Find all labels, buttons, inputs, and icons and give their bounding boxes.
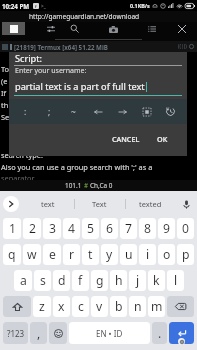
button[interactable]: l [167, 270, 184, 291]
button[interactable]: b [110, 296, 127, 317]
button[interactable]: Close [176, 23, 187, 34]
staticText: ?123 [7, 328, 25, 339]
staticText: ((|)) [178, 43, 187, 50]
button[interactable]: 3 [43, 218, 61, 239]
button[interactable]: Move left [91, 104, 106, 119]
button[interactable]: k [148, 270, 165, 291]
button[interactable]: 5 [82, 218, 99, 239]
button[interactable]: 4 [63, 218, 80, 239]
button[interactable]: ~ [66, 104, 81, 119]
button[interactable]: . [152, 322, 167, 344]
button[interactable]: texted [125, 191, 176, 216]
button[interactable]: Enter [169, 322, 194, 344]
staticText: e [49, 246, 56, 263]
staticText: z [39, 298, 45, 315]
staticText: x [58, 298, 65, 315]
button[interactable]: Move right [115, 104, 130, 119]
button[interactable]: List [146, 23, 157, 34]
button[interactable]: Select all [139, 104, 154, 119]
staticText: . [158, 325, 162, 342]
staticText: t [88, 246, 93, 263]
staticText: 0 [182, 220, 189, 237]
button[interactable]: w [23, 244, 41, 265]
button[interactable]: h [110, 270, 127, 291]
staticText: separator. [1, 173, 36, 183]
button[interactable]: d [53, 270, 70, 291]
staticText: To [1, 64, 10, 74]
button[interactable]: z [33, 296, 51, 317]
button[interactable]: v [91, 296, 108, 317]
staticText: c [78, 298, 84, 315]
button[interactable]: Text [74, 191, 125, 216]
button[interactable]: Voice input [176, 194, 196, 214]
staticText: 4 [68, 220, 75, 237]
button[interactable]: , [30, 322, 47, 344]
staticText: g [96, 272, 104, 289]
button[interactable]: 7 [120, 218, 137, 239]
staticText: : [24, 106, 27, 118]
button[interactable]: CANCEL [109, 131, 143, 147]
button[interactable]: Camera [108, 24, 119, 35]
button[interactable]: n [129, 296, 146, 317]
button[interactable]: u [120, 244, 137, 265]
button[interactable]: History [163, 104, 178, 119]
staticText: EN • ID [96, 328, 123, 339]
button[interactable]: j [129, 270, 146, 291]
staticText: (e [1, 76, 8, 86]
button[interactable]: Shift [3, 296, 31, 317]
button[interactable]: Search [69, 23, 80, 34]
button[interactable]: i [139, 244, 156, 265]
button[interactable]: y [101, 244, 118, 265]
staticText: Also you can use a group search with ';'… [1, 162, 153, 172]
button[interactable]: 2 [23, 218, 41, 239]
button[interactable]: m [148, 296, 165, 317]
staticText: ~ [71, 106, 76, 118]
staticText: r [69, 246, 75, 263]
button[interactable]: 9 [158, 218, 175, 239]
staticText: n [134, 298, 142, 315]
staticText: d [58, 272, 66, 289]
button[interactable]: 0 [177, 218, 194, 239]
staticText: m [151, 298, 163, 315]
button[interactable]: q [3, 244, 21, 265]
button[interactable]: s [34, 270, 51, 291]
button[interactable]: c [72, 296, 89, 317]
staticText: 8 [144, 220, 151, 237]
staticText: Enter your username: [15, 66, 87, 76]
button[interactable]: p [177, 244, 194, 265]
button[interactable]: 8 [139, 218, 156, 239]
button[interactable]: o [158, 244, 175, 265]
button[interactable]: 1 [3, 218, 21, 239]
staticText: # [84, 181, 89, 190]
button[interactable]: t [82, 244, 99, 265]
staticText: th [1, 100, 9, 110]
staticText: l [174, 272, 178, 289]
staticText: 6 [106, 220, 113, 237]
staticText: 101.1 [65, 181, 82, 190]
button[interactable]: ?123 [3, 322, 28, 344]
button[interactable]: text [22, 191, 74, 216]
staticText: search type. [1, 150, 43, 160]
button[interactable]: x [53, 296, 70, 317]
staticText: Script: [15, 52, 43, 65]
button[interactable]: EN • ID [69, 322, 150, 344]
button[interactable]: Filter [45, 23, 56, 34]
staticText: f [35, 4, 37, 9]
staticText: k [153, 272, 160, 289]
button[interactable]: 6 [101, 218, 118, 239]
button[interactable]: f [72, 270, 89, 291]
button[interactable]: Emoji [49, 322, 67, 344]
button[interactable]: : [18, 104, 33, 119]
button[interactable]: More suggestions [3, 196, 19, 212]
staticText: 2 [29, 220, 36, 237]
staticText: text [41, 199, 55, 209]
button[interactable]: Tabs [2, 22, 25, 35]
button[interactable]: e [43, 244, 61, 265]
button[interactable]: a [14, 270, 32, 291]
button[interactable]: g [91, 270, 108, 291]
button[interactable]: Backspace [167, 296, 194, 317]
staticText: 10:24 PM [2, 2, 30, 10]
button[interactable]: OK [154, 131, 171, 147]
button[interactable]: r [63, 244, 80, 265]
button[interactable]: ; [42, 104, 57, 119]
